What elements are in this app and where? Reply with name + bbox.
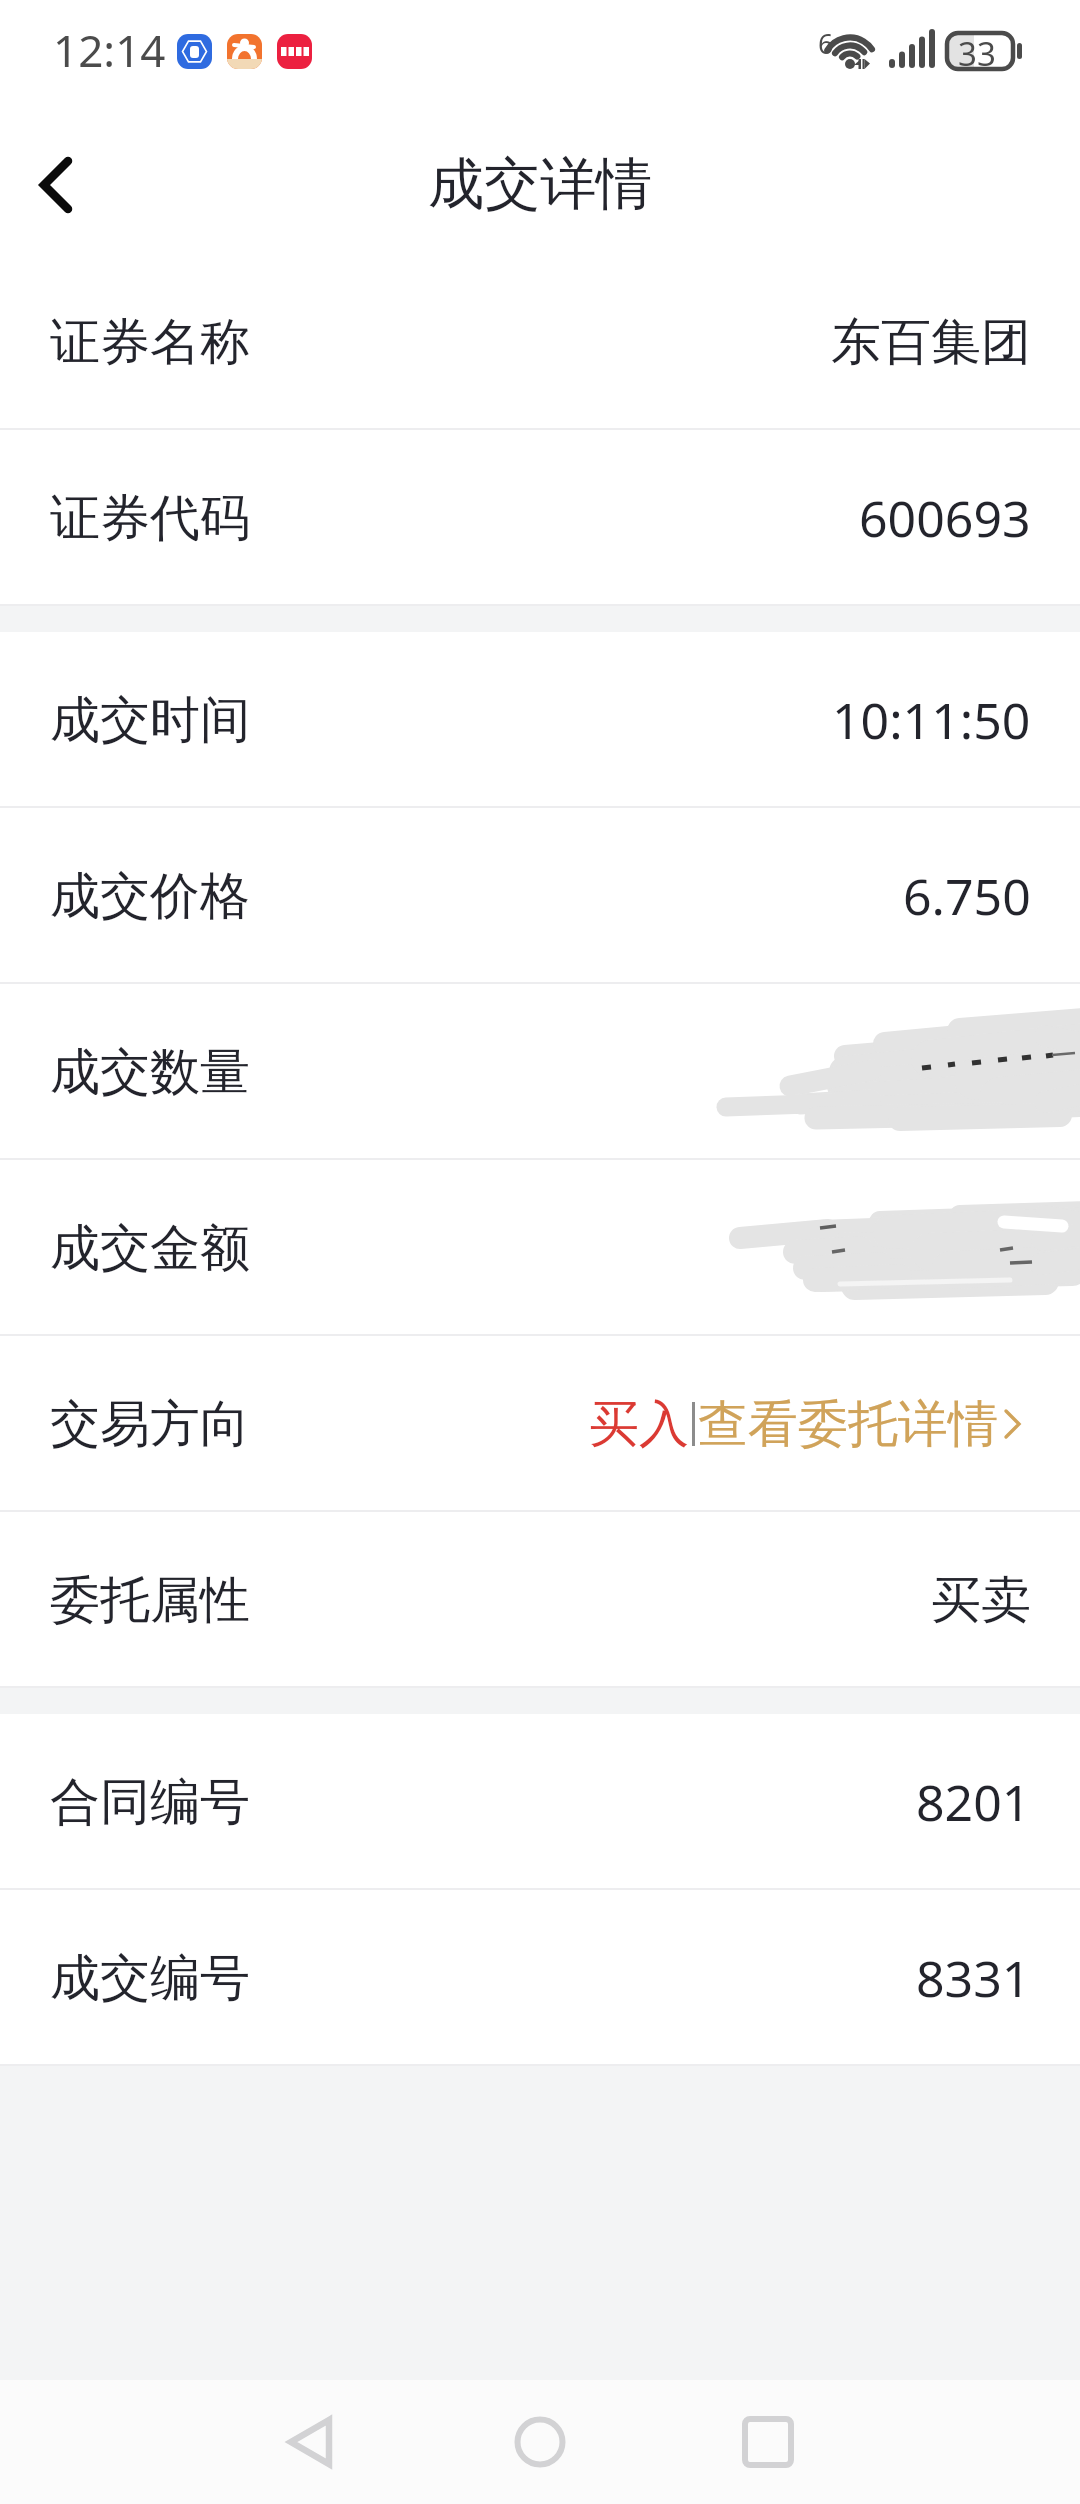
staticText: 买卖 xyxy=(931,1569,1031,1632)
staticText: 8201 xyxy=(916,1768,1031,1836)
staticText: 6.750 xyxy=(903,862,1031,930)
staticText: 12:14 xyxy=(53,20,166,80)
staticText: 委托属性 xyxy=(50,1569,250,1632)
button[interactable]: 成交时间 xyxy=(0,632,1080,808)
staticText: 成交金额 xyxy=(50,1217,250,1280)
staticText: 33 xyxy=(958,31,996,76)
button[interactable]: Back xyxy=(0,103,130,254)
button[interactable]: Recents xyxy=(708,2380,832,2504)
staticText: 成交详情 xyxy=(428,149,652,220)
button[interactable]: 成交金额 xyxy=(0,1160,1080,1336)
button[interactable]: 成交价格 xyxy=(0,808,1080,984)
button[interactable]: 查看委托详情 xyxy=(698,1336,1025,1512)
staticText: 东百集团 xyxy=(831,311,1031,374)
button[interactable]: 委托属性 xyxy=(0,1512,1080,1688)
button[interactable]: 证券代码 xyxy=(0,430,1080,606)
staticText: 8331 xyxy=(916,1944,1031,2012)
staticText: 6 xyxy=(818,25,834,62)
button[interactable]: Home xyxy=(478,2380,602,2504)
button[interactable]: 成交数量 xyxy=(0,984,1080,1160)
staticText: 证券名称 xyxy=(50,311,250,374)
staticText: 买入 xyxy=(589,1393,689,1456)
staticText: 成交数量 xyxy=(50,1041,250,1104)
button[interactable]: 合同编号 xyxy=(0,1714,1080,1890)
staticText: 合同编号 xyxy=(50,1771,250,1834)
staticText: 证券代码 xyxy=(50,487,250,550)
staticText: 成交时间 xyxy=(50,689,250,752)
button[interactable]: Back xyxy=(248,2380,372,2504)
staticText: 600693 xyxy=(859,484,1031,552)
staticText: 查看委托详情 xyxy=(698,1393,998,1456)
staticText: 成交编号 xyxy=(50,1947,250,2010)
staticText: 交易方向 xyxy=(50,1393,250,1456)
button[interactable]: 成交编号 xyxy=(0,1890,1080,2066)
staticText: 10:11:50 xyxy=(832,686,1031,754)
staticText: 成交价格 xyxy=(50,865,250,928)
button[interactable]: 证券名称 xyxy=(0,254,1080,430)
